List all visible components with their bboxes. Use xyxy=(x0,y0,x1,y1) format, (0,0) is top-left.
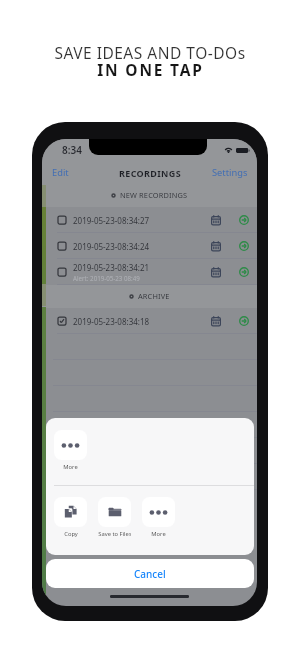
button[interactable]: 2019-05-23-08:34:18 xyxy=(42,308,257,334)
button[interactable]: Settings xyxy=(205,162,257,183)
staticText: Settings xyxy=(212,166,248,179)
button[interactable]: Edit xyxy=(42,162,76,183)
button[interactable]: 2019-05-23-08:34:27 xyxy=(42,207,257,233)
staticText: 2019-05-23-08:34:27 xyxy=(73,215,150,226)
button[interactable]: Play xyxy=(236,313,252,329)
staticText: SAVE IDEAS AND TO-DOs xyxy=(54,42,246,63)
staticText: More xyxy=(151,530,166,538)
staticText: Alert: 2019-05-23 08:49 xyxy=(73,274,140,282)
button[interactable]: 2019-05-23-08:34:24 xyxy=(42,233,257,259)
button[interactable]: Play xyxy=(236,264,252,280)
button[interactable]: Cancel xyxy=(46,559,254,588)
staticText: 2019-05-23-08:34:21 xyxy=(73,262,150,273)
staticText: Save to Files xyxy=(98,530,131,538)
staticText: Copy xyxy=(64,530,78,538)
staticText: 8:34 xyxy=(62,143,82,157)
button[interactable]: Schedule xyxy=(208,212,224,228)
staticText: RECORDINGS xyxy=(119,167,181,179)
staticText: 2019-05-23-08:34:18 xyxy=(73,316,150,327)
staticText: Edit xyxy=(52,166,69,179)
button[interactable]: Play xyxy=(236,238,252,254)
staticText: ARCHIVE xyxy=(138,291,170,301)
button[interactable]: Save to Files xyxy=(98,497,131,538)
staticText: 2019-05-23-08:34:24 xyxy=(73,241,150,252)
button[interactable]: More xyxy=(142,497,175,538)
button[interactable]: More xyxy=(54,430,87,471)
staticText: Cancel xyxy=(134,567,166,581)
button[interactable]: Copy xyxy=(54,497,87,538)
button[interactable]: Schedule xyxy=(208,264,224,280)
button[interactable]: Play xyxy=(236,212,252,228)
staticText: IN ONE TAP xyxy=(97,59,204,80)
button[interactable]: Schedule xyxy=(208,238,224,254)
staticText: NEW RECORDINGS xyxy=(120,190,188,200)
button[interactable]: 2019-05-23-08:34:21 xyxy=(42,259,257,285)
staticText: More xyxy=(63,463,78,471)
button[interactable]: Schedule xyxy=(208,313,224,329)
